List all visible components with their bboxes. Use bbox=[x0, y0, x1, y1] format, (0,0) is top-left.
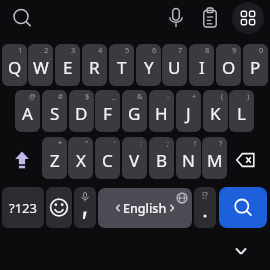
button[interactable]: 4 bbox=[82, 44, 107, 86]
staticText: ! bbox=[194, 138, 197, 148]
button[interactable]: Hide keyboard bbox=[229, 239, 253, 263]
staticText: ) bbox=[247, 91, 250, 101]
staticText: ? bbox=[219, 138, 223, 148]
staticText: 7 bbox=[178, 45, 183, 55]
staticText: S bbox=[50, 102, 60, 125]
button[interactable]: $ bbox=[69, 90, 94, 132]
staticText: 8 bbox=[205, 45, 210, 55]
staticText: W bbox=[33, 56, 49, 79]
button[interactable]: " bbox=[68, 137, 93, 179]
staticText: T bbox=[117, 56, 127, 79]
button[interactable]: : bbox=[122, 137, 147, 179]
staticText: V bbox=[129, 149, 140, 172]
button[interactable]: 1 bbox=[2, 44, 27, 86]
button[interactable]: - bbox=[149, 90, 174, 132]
button[interactable]: * bbox=[42, 137, 67, 179]
staticText: E bbox=[63, 56, 73, 79]
staticText: R bbox=[89, 56, 100, 79]
staticText: M bbox=[207, 149, 223, 172]
button[interactable]: ?123 bbox=[2, 187, 44, 228]
staticText: X bbox=[76, 149, 86, 172]
staticText: K bbox=[210, 102, 221, 125]
staticText: G bbox=[128, 102, 141, 125]
staticText: Q bbox=[8, 56, 22, 79]
staticText: _ bbox=[112, 91, 116, 101]
button[interactable]: ; bbox=[149, 137, 174, 179]
staticText: @ bbox=[29, 91, 36, 101]
staticText: $ bbox=[85, 91, 90, 101]
staticText: + bbox=[192, 91, 197, 101]
staticText: " bbox=[85, 138, 89, 148]
staticText: H bbox=[155, 102, 168, 125]
button[interactable]: 8 bbox=[189, 44, 214, 86]
staticText: L bbox=[237, 102, 246, 125]
button[interactable]: Clipboard bbox=[194, 2, 226, 34]
staticText: P bbox=[250, 56, 261, 79]
staticText: 0 bbox=[259, 45, 264, 55]
button[interactable]: Search bbox=[6, 2, 38, 34]
button[interactable]: ( bbox=[203, 90, 228, 132]
staticText: & bbox=[137, 91, 143, 101]
button[interactable]: & bbox=[122, 90, 147, 132]
button[interactable]: ? bbox=[202, 137, 227, 179]
button[interactable]: ! bbox=[176, 137, 201, 179]
button[interactable]: Voice input bbox=[160, 2, 192, 34]
button[interactable]: Emoji bbox=[46, 187, 72, 228]
staticText: 5 bbox=[125, 45, 130, 55]
staticText: !? bbox=[202, 190, 208, 201]
staticText: : bbox=[140, 138, 143, 148]
staticText: * bbox=[58, 138, 63, 148]
staticText: B bbox=[156, 149, 168, 172]
button[interactable]: 3 bbox=[55, 44, 80, 86]
button[interactable]: @ bbox=[15, 90, 40, 132]
staticText: F bbox=[103, 102, 112, 125]
staticText: D bbox=[75, 102, 88, 125]
staticText: 9 bbox=[232, 45, 237, 55]
button[interactable]: English bbox=[98, 188, 192, 228]
button[interactable]: 5 bbox=[109, 44, 134, 86]
staticText: 1 bbox=[18, 45, 23, 55]
button[interactable]: 0 bbox=[243, 44, 268, 86]
button[interactable]: 2 bbox=[28, 44, 53, 86]
staticText: - bbox=[167, 91, 170, 101]
staticText: ; bbox=[167, 138, 170, 148]
staticText: J bbox=[186, 102, 191, 125]
button[interactable]: Comma and voice bbox=[74, 187, 96, 228]
staticText: C bbox=[102, 149, 113, 172]
button[interactable]: Search bbox=[219, 187, 267, 228]
button[interactable]: Keyboard layouts bbox=[232, 2, 264, 34]
button[interactable]: 7 bbox=[162, 44, 187, 86]
staticText: ( bbox=[221, 91, 224, 101]
staticText: ?123 bbox=[9, 199, 37, 217]
button[interactable]: ) bbox=[229, 90, 254, 132]
staticText: U bbox=[168, 56, 181, 79]
staticText: Z bbox=[50, 149, 60, 172]
button[interactable]: # bbox=[42, 90, 67, 132]
button[interactable]: Shift bbox=[5, 144, 39, 178]
staticText: 4 bbox=[98, 45, 103, 55]
staticText: 6 bbox=[152, 45, 157, 55]
button[interactable]: _ bbox=[95, 90, 120, 132]
staticText: I bbox=[199, 56, 205, 79]
staticText: O bbox=[222, 56, 236, 79]
staticText: A bbox=[22, 102, 33, 125]
button[interactable]: Backspace bbox=[229, 143, 263, 177]
staticText: 2 bbox=[44, 45, 49, 55]
staticText: Y bbox=[144, 56, 154, 79]
button[interactable]: Period bbox=[194, 187, 216, 228]
button[interactable]: ' bbox=[95, 137, 120, 179]
staticText: N bbox=[182, 149, 195, 172]
staticText: 3 bbox=[71, 45, 76, 55]
button[interactable]: 9 bbox=[216, 44, 241, 86]
button[interactable]: 6 bbox=[136, 44, 161, 86]
button[interactable]: + bbox=[176, 90, 201, 132]
staticText: # bbox=[58, 91, 63, 101]
staticText: English bbox=[123, 200, 167, 217]
staticText: ' bbox=[114, 138, 116, 148]
